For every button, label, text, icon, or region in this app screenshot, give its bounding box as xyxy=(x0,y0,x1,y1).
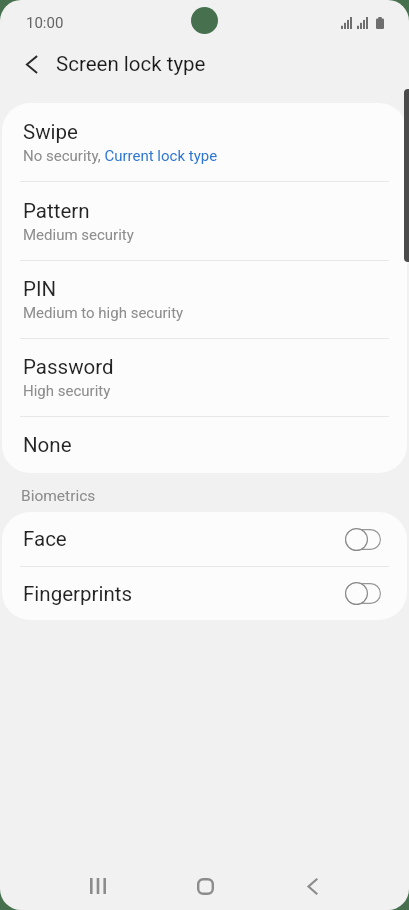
button[interactable]: PIN xyxy=(2,261,407,338)
button[interactable]: Back xyxy=(288,862,336,910)
button[interactable]: None xyxy=(2,417,407,473)
button[interactable]: Recent apps xyxy=(74,862,122,910)
button[interactable]: Swipe xyxy=(2,103,407,181)
staticText: 10:00 xyxy=(26,14,64,32)
button[interactable]: Face xyxy=(2,512,407,566)
button[interactable]: Navigate up xyxy=(0,41,54,87)
staticText: Swipe xyxy=(23,120,78,144)
staticText: PIN xyxy=(23,277,57,301)
staticText: Medium security xyxy=(23,226,134,244)
button[interactable]: Pattern xyxy=(2,182,407,260)
staticText: No security, Current lock type xyxy=(23,147,218,165)
button[interactable]: Fingerprints xyxy=(2,567,407,620)
button[interactable]: Password xyxy=(2,339,407,416)
staticText: High security xyxy=(23,382,111,400)
staticText: Pattern xyxy=(23,199,90,223)
button[interactable]: Home xyxy=(181,862,229,910)
staticText: Password xyxy=(23,355,114,379)
staticText: Fingerprints xyxy=(23,582,133,606)
staticText: None xyxy=(23,433,72,457)
staticText: Screen lock type xyxy=(56,52,206,76)
staticText: Biometrics xyxy=(21,487,96,505)
staticText: Face xyxy=(23,527,67,551)
staticText: Medium to high security xyxy=(23,304,184,322)
